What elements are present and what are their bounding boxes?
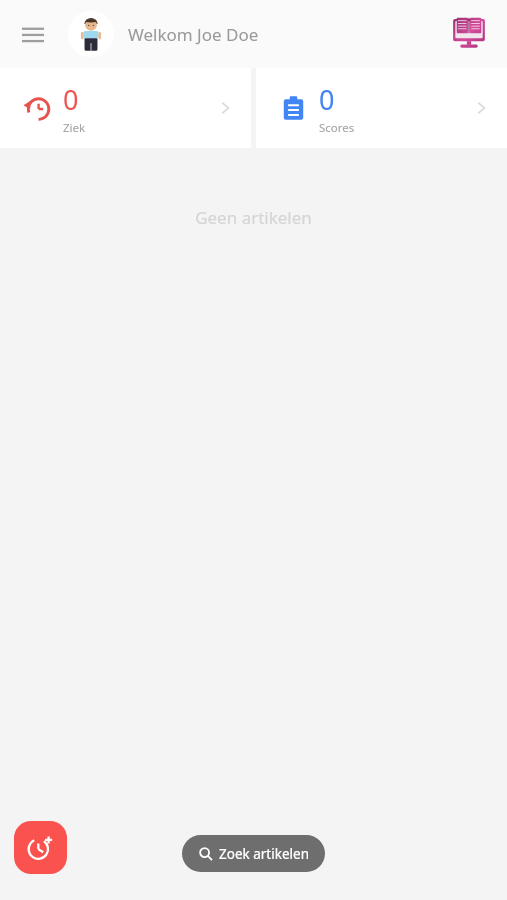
staticText: Geen artikelen [0, 206, 507, 229]
button[interactable]: Menu [16, 17, 50, 51]
button[interactable]: 0 [256, 68, 507, 148]
button[interactable]: Zoek artikelen [182, 835, 325, 872]
button[interactable]: 0 [0, 68, 251, 148]
staticText: 0 [319, 81, 335, 118]
staticText: Welkom Joe Doe [128, 23, 259, 46]
button[interactable]: Bibliotheek [447, 12, 491, 56]
staticText: Zoek artikelen [219, 845, 309, 863]
staticText: Scores [319, 120, 355, 136]
button[interactable]: Nieuwe registratie toevoegen [14, 821, 67, 874]
button[interactable] [68, 11, 114, 57]
staticText: 0 [63, 81, 79, 118]
staticText: Ziek [63, 120, 86, 136]
